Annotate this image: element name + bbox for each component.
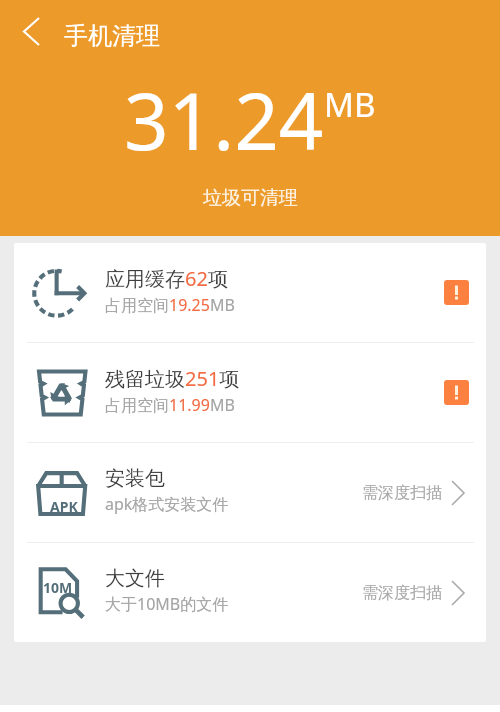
staticText: 大文件 xyxy=(105,566,165,591)
staticText: MB xyxy=(324,82,376,127)
staticText: 残留垃圾251项 xyxy=(105,365,240,392)
staticText: 占用空间11.99MB xyxy=(105,394,235,416)
staticText: apk格式安装文件 xyxy=(105,493,229,515)
staticText: APK xyxy=(50,497,78,516)
staticText: 应用缓存62项 xyxy=(105,265,228,292)
button[interactable]: 10M xyxy=(14,543,486,642)
staticText: 需深度扫描 xyxy=(362,483,442,503)
button[interactable]: 应用缓存62项 xyxy=(14,243,486,342)
staticText: 31.24 xyxy=(124,67,324,173)
button[interactable]: Back xyxy=(8,8,54,54)
staticText: 手机清理 xyxy=(64,21,160,51)
staticText: 10M xyxy=(43,578,73,597)
button[interactable]: APK xyxy=(14,443,486,542)
staticText: 占用空间19.25MB xyxy=(105,294,235,316)
staticText: 需深度扫描 xyxy=(362,583,442,603)
staticText: 垃圾可清理 xyxy=(203,186,298,210)
button[interactable]: 残留垃圾251项 xyxy=(14,343,486,442)
staticText: 安装包 xyxy=(105,466,165,491)
staticText: 大于10MB的文件 xyxy=(105,593,229,615)
